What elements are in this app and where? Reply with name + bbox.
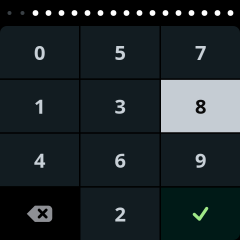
button[interactable]: 2: [80, 188, 159, 240]
button[interactable]: Delete: [0, 188, 79, 240]
staticText: 9: [195, 147, 206, 173]
button[interactable]: 0: [0, 26, 79, 78]
button[interactable]: 7: [161, 26, 240, 78]
button[interactable]: 6: [80, 134, 159, 186]
button[interactable]: 1: [0, 80, 79, 132]
button[interactable]: 5: [80, 26, 159, 78]
staticText: 2: [114, 200, 125, 227]
staticText: 8: [195, 93, 206, 119]
staticText: 6: [114, 147, 125, 173]
staticText: 5: [114, 39, 125, 65]
button[interactable]: 3: [80, 80, 159, 132]
staticText: 4: [34, 147, 45, 173]
button[interactable]: 4: [0, 134, 79, 186]
staticText: 7: [195, 39, 206, 65]
button[interactable]: Confirm: [161, 188, 240, 240]
button[interactable]: 8: [161, 80, 240, 132]
staticText: 3: [114, 93, 125, 119]
button[interactable]: 9: [161, 134, 240, 186]
staticText: 1: [34, 93, 45, 119]
staticText: 0: [34, 39, 45, 65]
